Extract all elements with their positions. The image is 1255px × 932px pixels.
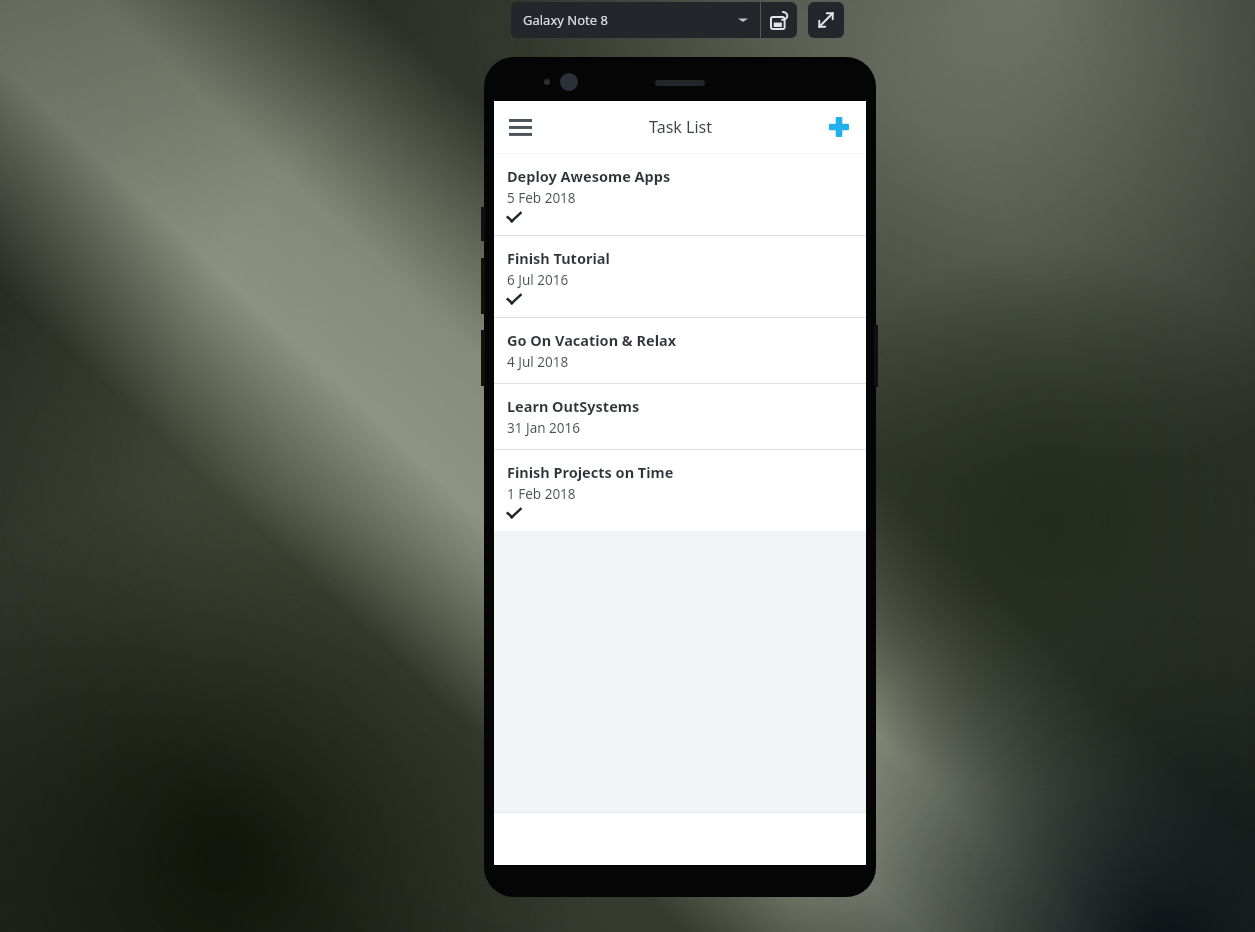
button[interactable]: Menu xyxy=(498,105,542,149)
staticText: Deploy Awesome Apps xyxy=(507,166,671,186)
staticText: Finish Tutorial xyxy=(507,248,610,268)
staticText: Galaxy Note 8 xyxy=(523,11,738,29)
button[interactable]: Save device xyxy=(761,2,797,38)
staticText: Task List xyxy=(649,116,712,138)
staticText: 5 Feb 2018 xyxy=(507,189,576,207)
staticText: 31 Jan 2016 xyxy=(507,419,580,437)
button[interactable]: Finish Tutorial xyxy=(494,236,866,317)
staticText: 4 Jul 2018 xyxy=(507,353,569,371)
button[interactable]: Finish Projects on Time xyxy=(494,450,866,531)
button[interactable]: Learn OutSystems xyxy=(494,384,866,449)
staticText: Learn OutSystems xyxy=(507,396,640,416)
staticText: Go On Vacation & Relax xyxy=(507,330,677,350)
button[interactable]: Go On Vacation & Relax xyxy=(494,318,866,383)
button[interactable]: Deploy Awesome Apps xyxy=(494,154,866,235)
staticText: 6 Jul 2016 xyxy=(507,271,569,289)
button[interactable]: Galaxy Note 8 xyxy=(511,2,760,38)
staticText: 1 Feb 2018 xyxy=(507,485,576,503)
staticText: Finish Projects on Time xyxy=(507,462,674,482)
button[interactable]: Add task xyxy=(818,106,860,148)
button[interactable]: Fullscreen xyxy=(808,2,844,38)
